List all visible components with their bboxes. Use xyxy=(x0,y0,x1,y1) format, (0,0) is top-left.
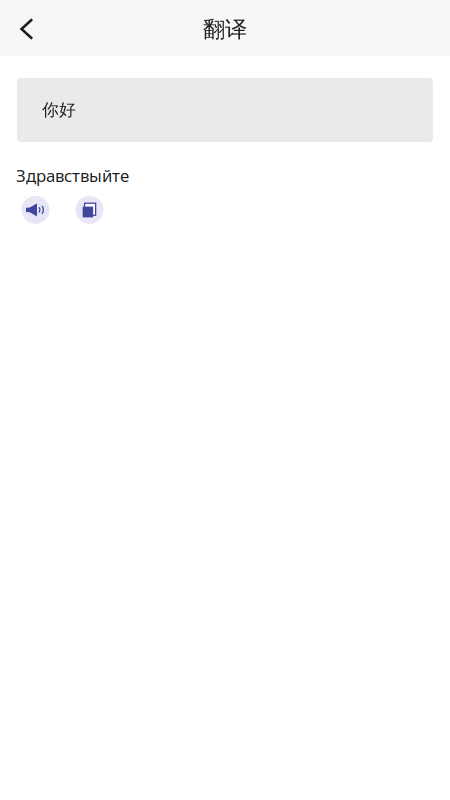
staticText: 翻译 xyxy=(203,16,247,43)
button[interactable]: Back xyxy=(5,7,49,51)
button[interactable]: Play pronunciation xyxy=(21,196,49,224)
button[interactable]: Copy translation xyxy=(75,196,103,224)
staticText: 你好 xyxy=(42,99,76,121)
staticText: Здравствыйте xyxy=(16,164,129,187)
